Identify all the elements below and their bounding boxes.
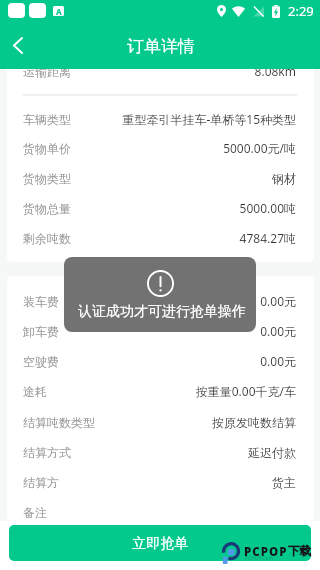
staticText: PCPOP.Com [245,555,274,561]
staticText: 车辆类型 [23,112,71,127]
button[interactable]: 运输距离 [0,58,320,84]
staticText: 装车费 [23,294,59,309]
staticText: 延迟付款 [248,445,296,460]
button[interactable]: 结算方 [0,469,320,495]
staticText: 5000.00吨 [239,200,296,216]
button[interactable]: 货物单价 [0,135,320,161]
staticText: 重型牵引半挂车-单桥等15种类型 [122,111,296,127]
staticText: 结算方 [23,475,59,490]
staticText: 货主 [272,475,296,490]
staticText: 货物总量 [23,201,71,216]
button[interactable]: 卸车费 [0,318,320,344]
staticText: 订单详情 [127,36,195,57]
staticText: 货物单价 [23,141,71,156]
button[interactable]: 货物总量 [0,195,320,221]
staticText: 货物类型 [23,171,71,186]
button[interactable]: 立即抢单 [9,525,311,561]
button[interactable]: 备注 [0,499,320,525]
button[interactable]: 结算吨数类型 [0,409,320,435]
staticText: 0.00元 [260,323,296,339]
button[interactable]: 空驶费 [0,348,320,374]
staticText: 运输距离 [23,64,71,79]
staticText: A [56,6,62,16]
staticText: 按重量0.00千克/车 [195,383,296,399]
button[interactable]: 结算方式 [0,439,320,465]
staticText: 卸车费 [23,324,59,339]
staticText: 5000.00元/吨 [223,140,296,156]
button[interactable]: 途耗 [0,378,320,404]
button[interactable]: 车辆类型 [0,106,320,132]
staticText: 认证成功才可进行抢单操作 [78,303,246,321]
button[interactable]: 装车费 [0,288,320,314]
staticText: 2:29 [288,2,314,20]
staticText: 4784.27吨 [239,230,296,246]
staticText: 8.08km [254,63,296,79]
staticText: 结算吨数类型 [23,415,95,430]
button[interactable]: 剩余吨数 [0,225,320,251]
staticText: 下载 [288,544,311,558]
staticText: 剩余吨数 [23,231,71,246]
staticText: 立即抢单 [132,534,189,552]
staticText: 钢材 [272,171,296,186]
button[interactable]: 货物类型 [0,165,320,191]
staticText: 结算方式 [23,445,71,460]
button[interactable]: Back [0,21,42,69]
staticText: 按原发吨数结算 [212,415,296,430]
staticText: 备注 [23,505,47,520]
staticText: 途耗 [23,384,47,399]
staticText: 0.00元 [260,353,296,369]
staticText: PCPOP [244,544,288,560]
staticText: 0.00元 [260,293,296,309]
staticText: 空驶费 [23,354,59,369]
